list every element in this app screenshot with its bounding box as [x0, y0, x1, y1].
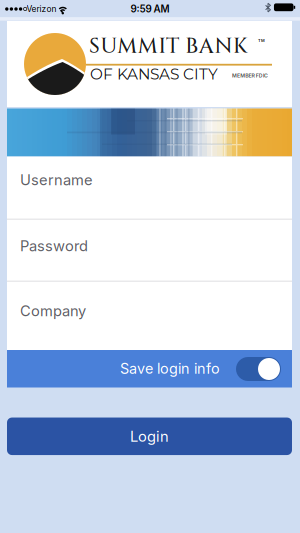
staticText: OF KANSAS CITY: [90, 65, 218, 83]
staticText: Save login info: [120, 360, 220, 377]
button[interactable]: Username: [7, 152, 292, 208]
staticText: Company: [20, 302, 86, 320]
staticText: TM: [258, 38, 265, 43]
button[interactable]: Company: [7, 283, 292, 339]
staticText: SUMMIT BANK: [89, 32, 248, 61]
staticText: MEMBER FDIC: [232, 72, 268, 79]
button[interactable]: Password: [7, 218, 292, 274]
staticText: 9:59 AM: [130, 3, 169, 15]
staticText: Login: [130, 427, 169, 445]
staticText: Password: [20, 237, 88, 255]
button[interactable]: Save login info: [236, 357, 281, 381]
button[interactable]: Login: [7, 418, 292, 455]
staticText: Verizon: [26, 4, 56, 14]
staticText: Username: [20, 171, 93, 189]
